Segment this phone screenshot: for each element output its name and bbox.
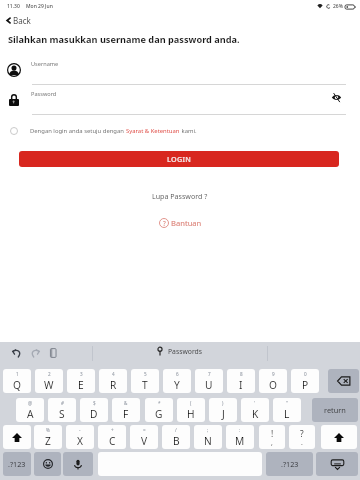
staticText: Back <box>13 15 31 26</box>
staticText: I <box>239 378 243 392</box>
staticText: , <box>271 438 273 447</box>
button[interactable]: / <box>162 425 190 449</box>
button[interactable]: Shift <box>321 425 357 449</box>
button[interactable]: Show password <box>327 88 345 106</box>
staticText: K <box>252 407 259 421</box>
staticText: / <box>175 427 177 433</box>
staticText: R <box>110 378 117 392</box>
staticText: W <box>44 378 54 392</box>
button[interactable]: Dengan login anda setuju dengan <box>0 124 203 137</box>
button[interactable]: - <box>66 425 94 449</box>
button[interactable]: 7 <box>195 369 223 393</box>
button[interactable]: .?123 <box>3 452 31 476</box>
staticText: 5 <box>144 371 147 377</box>
staticText: O <box>269 378 277 392</box>
staticText: @ <box>28 400 33 406</box>
staticText: 0 <box>304 371 307 377</box>
button[interactable]: 8 <box>227 369 255 393</box>
button[interactable]: Hide keyboard <box>316 452 358 476</box>
button[interactable]: ; <box>194 425 222 449</box>
button[interactable]: Undo <box>7 344 25 362</box>
button[interactable]: Paste <box>44 344 62 362</box>
button[interactable]: Redo <box>26 344 44 362</box>
staticText: ? <box>300 428 304 439</box>
staticText: " <box>286 400 288 406</box>
button[interactable]: 9 <box>259 369 287 393</box>
button[interactable]: Passwords <box>155 345 204 358</box>
button[interactable]: 1 <box>3 369 31 393</box>
staticText: # <box>61 400 64 406</box>
button[interactable]: Shift <box>3 425 31 449</box>
staticText: 8 <box>240 371 243 377</box>
staticText: X <box>77 434 83 448</box>
button[interactable]: Back <box>0 13 37 28</box>
button[interactable]: LOGIN <box>19 151 339 167</box>
button[interactable]: 5 <box>131 369 159 393</box>
staticText: LOGIN <box>167 154 192 164</box>
staticText: M <box>235 434 245 448</box>
button[interactable]: & <box>112 398 140 422</box>
button[interactable]: * <box>145 398 173 422</box>
button[interactable]: $ <box>80 398 108 422</box>
staticText: - <box>79 427 81 433</box>
staticText: Bantuan <box>171 218 202 228</box>
staticText: .?123 <box>8 459 26 469</box>
staticText: S <box>59 407 65 421</box>
staticText: ( <box>190 400 192 406</box>
button[interactable]: 4 <box>99 369 127 393</box>
button[interactable]: # <box>48 398 76 422</box>
staticText: + <box>111 427 114 433</box>
button[interactable]: ( <box>177 398 205 422</box>
button[interactable]: = <box>130 425 158 449</box>
button[interactable]: ? <box>155 217 206 229</box>
staticText: N <box>204 434 212 448</box>
staticText: 1 <box>16 371 19 377</box>
button[interactable]: . <box>289 425 315 449</box>
button[interactable]: Backspace <box>328 369 359 393</box>
button[interactable]: " <box>273 398 301 422</box>
staticText: Username <box>31 60 59 68</box>
button[interactable]: , <box>259 425 285 449</box>
staticText: P <box>302 378 309 392</box>
button[interactable]: Dictate <box>63 452 93 476</box>
staticText: H <box>187 407 195 421</box>
staticText: 2 <box>48 371 51 377</box>
staticText: ; <box>207 427 209 433</box>
staticText: .?123 <box>281 459 299 469</box>
staticText: G <box>155 407 163 421</box>
staticText: ? <box>163 219 166 227</box>
button[interactable]: 3 <box>67 369 95 393</box>
button[interactable]: return <box>312 398 358 422</box>
button[interactable]: Emoji <box>34 452 61 476</box>
button[interactable]: .?123 <box>266 452 313 476</box>
staticText: Z <box>45 434 51 448</box>
button[interactable]: ) <box>209 398 237 422</box>
staticText: % <box>46 427 50 433</box>
staticText: & <box>124 400 128 406</box>
button[interactable]: + <box>98 425 126 449</box>
staticText: J <box>222 407 225 421</box>
staticText: 3 <box>80 371 83 377</box>
staticText: D <box>90 407 98 421</box>
staticText: 7 <box>208 371 211 377</box>
staticText: 4 <box>112 371 115 377</box>
button[interactable]: Lupa Password ? <box>146 190 214 202</box>
button[interactable]: @ <box>16 398 44 422</box>
button[interactable]: 0 <box>291 369 319 393</box>
staticText: A <box>27 407 34 421</box>
staticText: Q <box>13 378 21 392</box>
staticText: . <box>301 438 303 447</box>
button[interactable]: 2 <box>35 369 63 393</box>
staticText: Y <box>174 378 180 392</box>
button[interactable]: ' <box>241 398 269 422</box>
staticText: T <box>142 378 148 392</box>
staticText: $ <box>93 400 96 406</box>
button[interactable]: % <box>34 425 62 449</box>
staticText: U <box>205 378 213 392</box>
staticText: = <box>143 427 146 433</box>
button[interactable]: 6 <box>163 369 191 393</box>
staticText: : <box>239 427 241 433</box>
button[interactable]: : <box>226 425 254 449</box>
staticText: Silahkan masukkan username dan password … <box>8 33 240 46</box>
